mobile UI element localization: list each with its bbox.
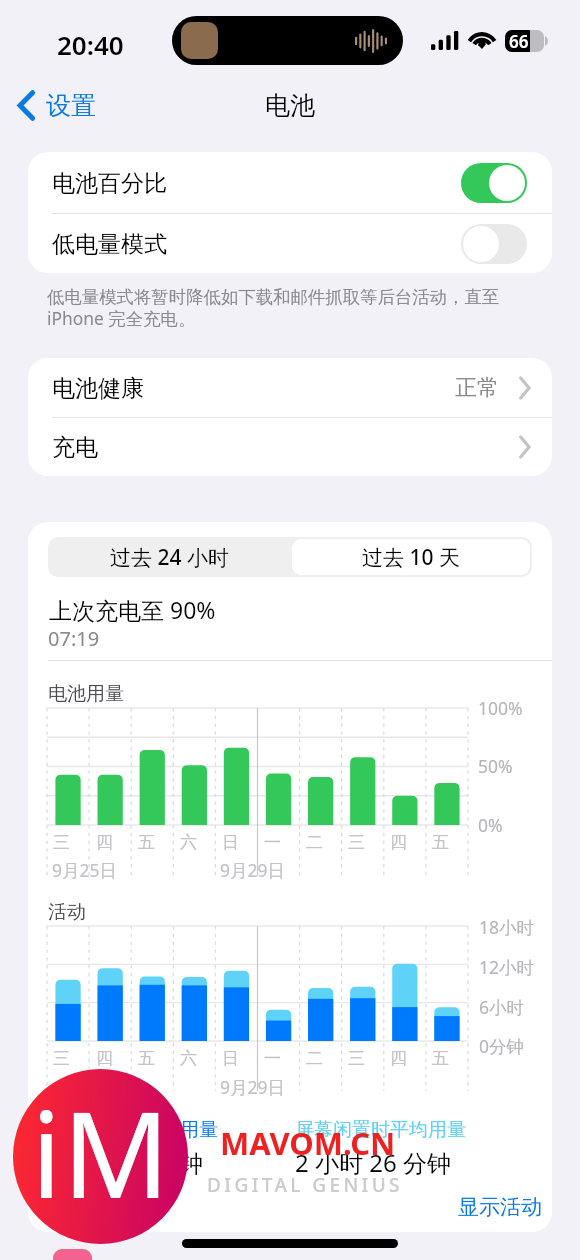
staticText: 五 [432,1048,449,1069]
staticText: 屏幕闲置时平均用量 [295,1118,466,1142]
staticText: 电池 [265,90,315,121]
staticText: 过去 10 天 [362,543,460,572]
button[interactable]: 显示活动 [458,1194,542,1220]
staticText: 20:40 [57,27,124,62]
staticText: MAVOM.CN [220,1122,396,1164]
staticText: 日 [222,832,239,853]
staticText: 五 [138,832,155,853]
staticText: 三 [348,832,365,853]
staticText: 三 [348,1048,365,1069]
staticText: 电池用量 [48,682,124,706]
staticText: 四 [96,1048,113,1069]
button[interactable]: 电池百分比 [28,152,552,213]
staticText: 50% [478,754,513,778]
staticText: 18小时 [479,915,535,939]
staticText: 四 [390,1048,407,1069]
staticText: 100% [478,696,523,720]
staticText: 0% [478,813,503,837]
button[interactable]: 过去 10 天 [292,539,530,575]
staticText: iM [31,1072,171,1233]
staticText: 屏幕使用时平均用量 [47,1118,218,1142]
staticText: 五 [432,832,449,853]
staticText: 一 [264,832,281,853]
staticText: 1 小时 53 分钟 [47,1146,203,1179]
staticText: 6小时 [479,995,525,1019]
staticText: 07:19 [48,625,100,652]
staticText: 正常 [455,374,499,402]
staticText: 一 [264,1048,281,1069]
staticText: 二 [306,1048,323,1069]
staticText: 低电量模式 [52,230,167,259]
staticText: 五 [138,1048,155,1069]
staticText: 六 [180,832,197,853]
staticText: 三 [53,832,70,853]
staticText: 电池健康 [52,374,144,403]
staticText: 三 [53,1048,70,1069]
staticText: DIGITAL GENIUS [207,1172,403,1198]
button[interactable]: 设置 [12,85,102,126]
staticText: 2 小时 26 分钟 [295,1146,451,1179]
staticText: 四 [96,832,113,853]
staticText: 二 [306,832,323,853]
staticText: 0分钟 [479,1034,525,1058]
staticText: 过去 24 小时 [110,543,229,572]
staticText: 设置 [46,90,96,121]
staticText: 电池百分比 [52,169,167,198]
staticText: 六 [180,1048,197,1069]
staticText: 四 [390,832,407,853]
button[interactable]: 低电量模式 [28,213,552,273]
staticText: 9月25日 [52,858,118,882]
button[interactable]: 充电 [28,417,552,476]
staticText: 充电 [52,433,98,462]
staticText: 活动 [48,900,86,924]
staticText: 上次充电至 90% [49,594,216,625]
button[interactable]: 过去 24 小时 [48,537,290,577]
staticText: 9月29日 [220,1075,286,1099]
staticText: 日 [222,1048,239,1069]
staticText: 66 [509,30,529,51]
staticText: 12小时 [479,955,535,979]
button[interactable]: 电池健康 [28,358,552,417]
staticText: 低电量模式将暂时降低如下载和邮件抓取等后台活动，直至 iPhone 完全充电。 [47,286,500,330]
staticText: 9月29日 [220,858,286,882]
